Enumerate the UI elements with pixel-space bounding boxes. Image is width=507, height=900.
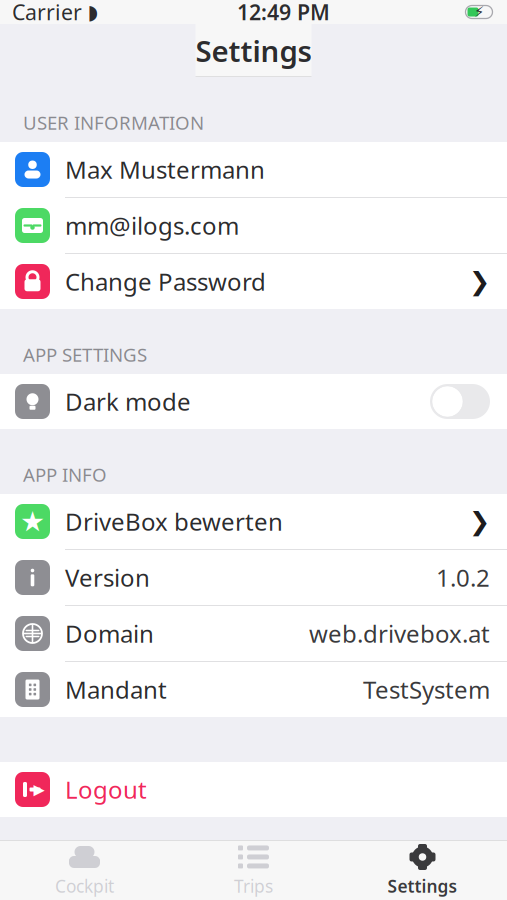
staticText: Mandant (65, 674, 167, 705)
button[interactable]: Trips (169, 840, 338, 900)
staticText: ❯ (469, 267, 490, 296)
staticText: Trips (234, 874, 273, 897)
staticText: ❯ (469, 507, 490, 536)
button[interactable]: Cockpit (0, 840, 169, 900)
staticText: Settings (387, 874, 457, 897)
staticText: Version (65, 562, 150, 593)
staticText: ◗ (87, 1, 98, 23)
button[interactable]: Dark mode (0, 374, 507, 429)
staticText: USER INFORMATION (23, 110, 204, 135)
staticText: mm@ilogs.com (65, 210, 239, 241)
staticText: DriveBox bewerten (65, 506, 283, 537)
staticText: TestSystem (363, 674, 490, 705)
button[interactable]: Max Mustermann (0, 142, 507, 197)
staticText: Cockpit (55, 874, 114, 897)
staticText: APP SETTINGS (23, 342, 147, 367)
staticText: Settings (195, 31, 311, 70)
staticText: web.drivebox.at (309, 618, 490, 649)
staticText: APP INFO (23, 462, 107, 487)
staticText: ⚡︎ (474, 4, 484, 20)
button[interactable]: Settings (338, 840, 507, 900)
staticText: Max Mustermann (65, 154, 265, 185)
button[interactable]: ★ (0, 494, 507, 549)
button[interactable]: mm@ilogs.com (0, 198, 507, 253)
staticText: 12:49 PM (237, 0, 330, 26)
staticText: Carrier (12, 0, 82, 26)
button[interactable]: Change Password (0, 254, 507, 309)
staticText: Domain (65, 618, 154, 649)
staticText: ▶ (33, 781, 44, 798)
staticText: Change Password (65, 266, 266, 297)
staticText: 1.0.2 (436, 562, 490, 593)
staticText: Dark mode (65, 386, 191, 417)
staticText: ★ (20, 506, 45, 537)
button[interactable]: ▶ (0, 762, 507, 817)
staticText: Logout (65, 774, 147, 805)
